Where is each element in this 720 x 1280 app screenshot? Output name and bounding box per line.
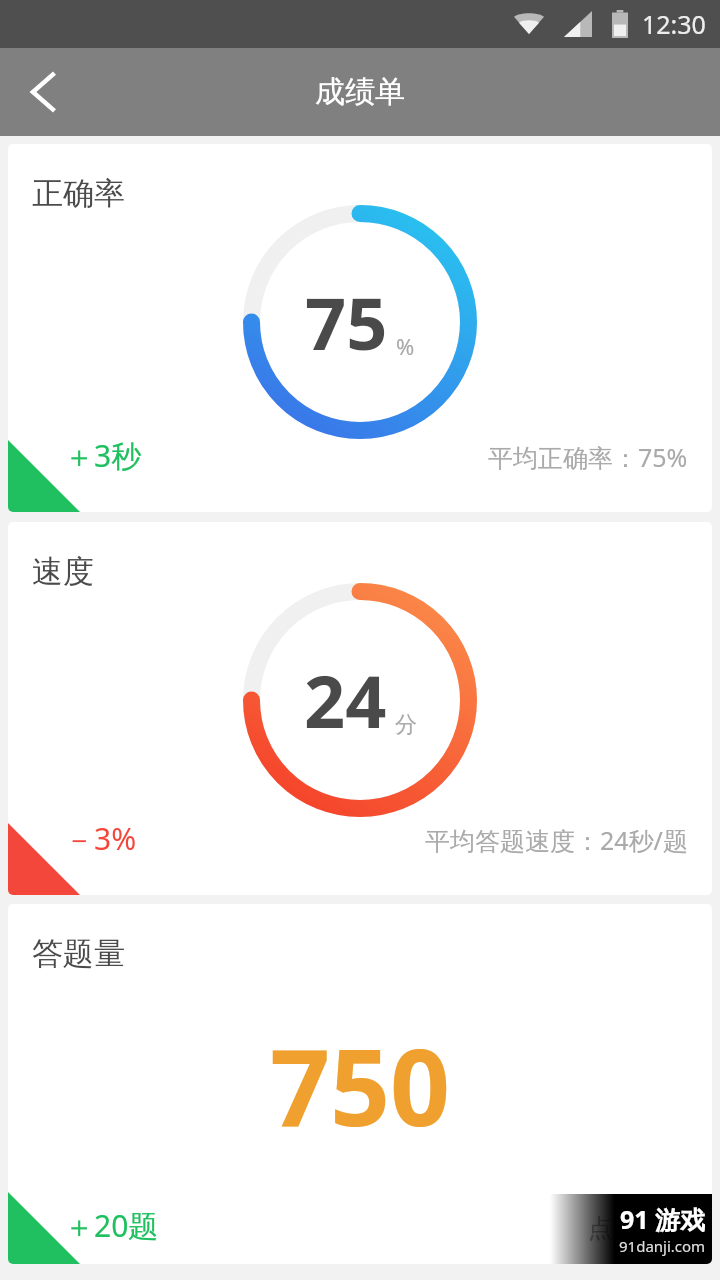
button[interactable]: 正确率 <box>8 144 712 512</box>
staticText: 分 <box>395 711 417 739</box>
staticText: ＋3秒 <box>64 435 142 476</box>
button[interactable]: Back <box>0 48 88 136</box>
staticText: 91 游戏 <box>620 1202 706 1236</box>
staticText: 正确率 <box>32 174 125 213</box>
button[interactable]: 速度 <box>8 522 712 895</box>
staticText: 750 <box>270 1014 451 1157</box>
staticText: 答题量 <box>32 934 125 973</box>
staticText: －3% <box>64 818 137 859</box>
button[interactable]: 答题量 <box>8 904 712 1264</box>
staticText: % <box>396 331 415 361</box>
staticText: 点击查看 <box>588 1213 688 1244</box>
staticText: 平均答题速度：24秒/题 <box>425 823 688 857</box>
staticText: 12:30 <box>642 7 706 41</box>
staticText: 平均正确率：75% <box>488 440 688 474</box>
staticText: 91danji.com <box>619 1236 706 1256</box>
staticText: 24 <box>304 651 387 749</box>
staticText: 成绩单 <box>315 73 405 111</box>
staticText: 速度 <box>32 552 94 591</box>
staticText: 75 <box>305 273 388 371</box>
staticText: ＋20题 <box>64 1205 159 1246</box>
